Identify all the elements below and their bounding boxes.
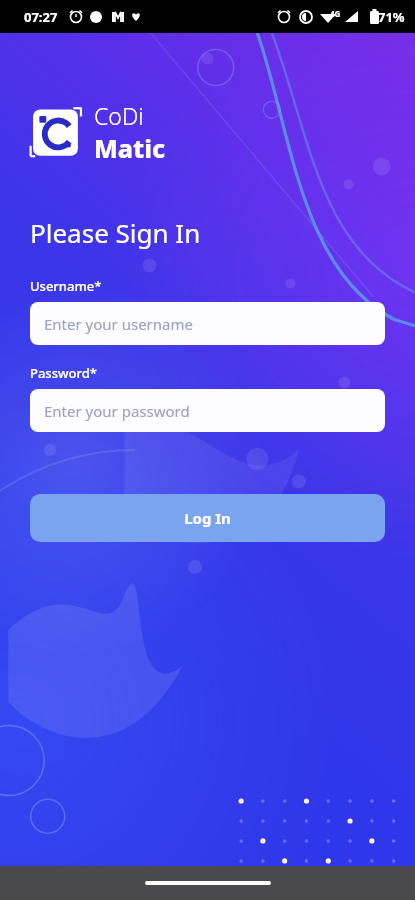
button[interactable]: Enter your username: [30, 302, 385, 345]
button[interactable]: Enter your password: [30, 389, 385, 432]
staticText: CoDi: [94, 100, 144, 131]
staticText: Please Sign In: [30, 215, 201, 250]
staticText: 07:27: [24, 8, 58, 26]
staticText: 4G: [330, 8, 341, 19]
staticText: Matic: [94, 131, 166, 165]
staticText: Username*: [30, 277, 102, 295]
staticText: 71%: [378, 8, 405, 26]
staticText: Log In: [184, 508, 231, 528]
button[interactable]: Log In: [30, 494, 385, 542]
staticText: Enter your password: [44, 401, 190, 421]
staticText: Password*: [30, 364, 97, 382]
staticText: Enter your username: [44, 314, 193, 334]
